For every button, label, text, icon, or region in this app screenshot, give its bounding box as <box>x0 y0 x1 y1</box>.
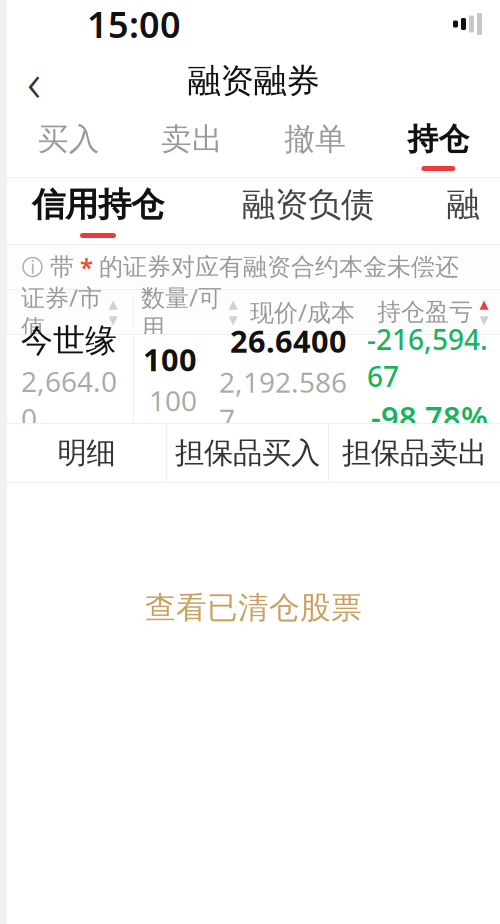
staticText: -98.78% <box>371 397 488 437</box>
staticText: * <box>74 251 99 283</box>
button[interactable]: 融 <box>443 178 483 244</box>
button[interactable]: 买入 <box>7 114 130 177</box>
button[interactable]: 信用持仓 <box>23 178 173 244</box>
staticText: 的证券对应有融资合约本金未偿还 <box>99 252 459 282</box>
staticText: 信用持仓 <box>32 184 164 225</box>
staticText: 持仓盈亏 <box>377 297 473 327</box>
button[interactable]: 担保品卖出 <box>329 424 500 482</box>
staticText: 明细 <box>57 435 115 471</box>
staticText: 2,192.5867 <box>219 363 347 438</box>
staticText: ▲ <box>108 297 117 311</box>
button[interactable]: 卖出 <box>130 114 253 177</box>
staticText: 融 <box>446 184 479 225</box>
staticText: -216,594.67 <box>367 320 488 395</box>
staticText: 100 <box>143 339 197 380</box>
staticText: 26.6400 <box>230 320 347 361</box>
staticText: 今世缘 <box>21 321 117 360</box>
button[interactable]: 撤单 <box>253 114 377 177</box>
staticText: 数量/可用 <box>141 281 222 343</box>
button[interactable]: 融资负债 <box>233 178 383 244</box>
staticText: 带 <box>50 252 74 282</box>
staticText: 2,664.00 <box>21 362 117 437</box>
button[interactable]: 今世缘 <box>7 335 133 423</box>
staticText: 卖出 <box>161 120 223 158</box>
staticText: ▼ <box>479 313 488 327</box>
staticText: 15:00 <box>87 0 181 48</box>
staticText: 查看已清仓股票 <box>145 589 362 627</box>
button[interactable]: 担保品买入 <box>167 424 328 482</box>
staticText: 融资融券 <box>187 60 319 101</box>
button[interactable]: 查看已清仓股票 <box>129 579 378 637</box>
staticText: 持仓 <box>407 120 469 158</box>
staticText: ▲ <box>479 297 488 311</box>
staticText: 撤单 <box>284 120 346 158</box>
staticText: i <box>30 255 34 278</box>
staticText: 现价/成本 <box>250 296 355 328</box>
button[interactable]: 返回 <box>7 52 61 110</box>
staticText: 买入 <box>38 120 100 158</box>
button[interactable]: 明细 <box>7 424 166 482</box>
staticText: 担保品卖出 <box>342 435 487 471</box>
staticText: ‹ <box>27 46 41 116</box>
staticText: ▼ <box>108 313 117 327</box>
staticText: 证券/市值 <box>21 281 102 343</box>
staticText: ▼ <box>228 313 237 327</box>
staticText: ▲ <box>228 297 237 311</box>
staticText: 融资负债 <box>242 184 374 225</box>
staticText: 担保品买入 <box>175 435 320 471</box>
button[interactable]: 持仓 <box>377 114 500 177</box>
button[interactable]: 100 <box>134 335 500 423</box>
staticText: 100 <box>149 382 197 419</box>
